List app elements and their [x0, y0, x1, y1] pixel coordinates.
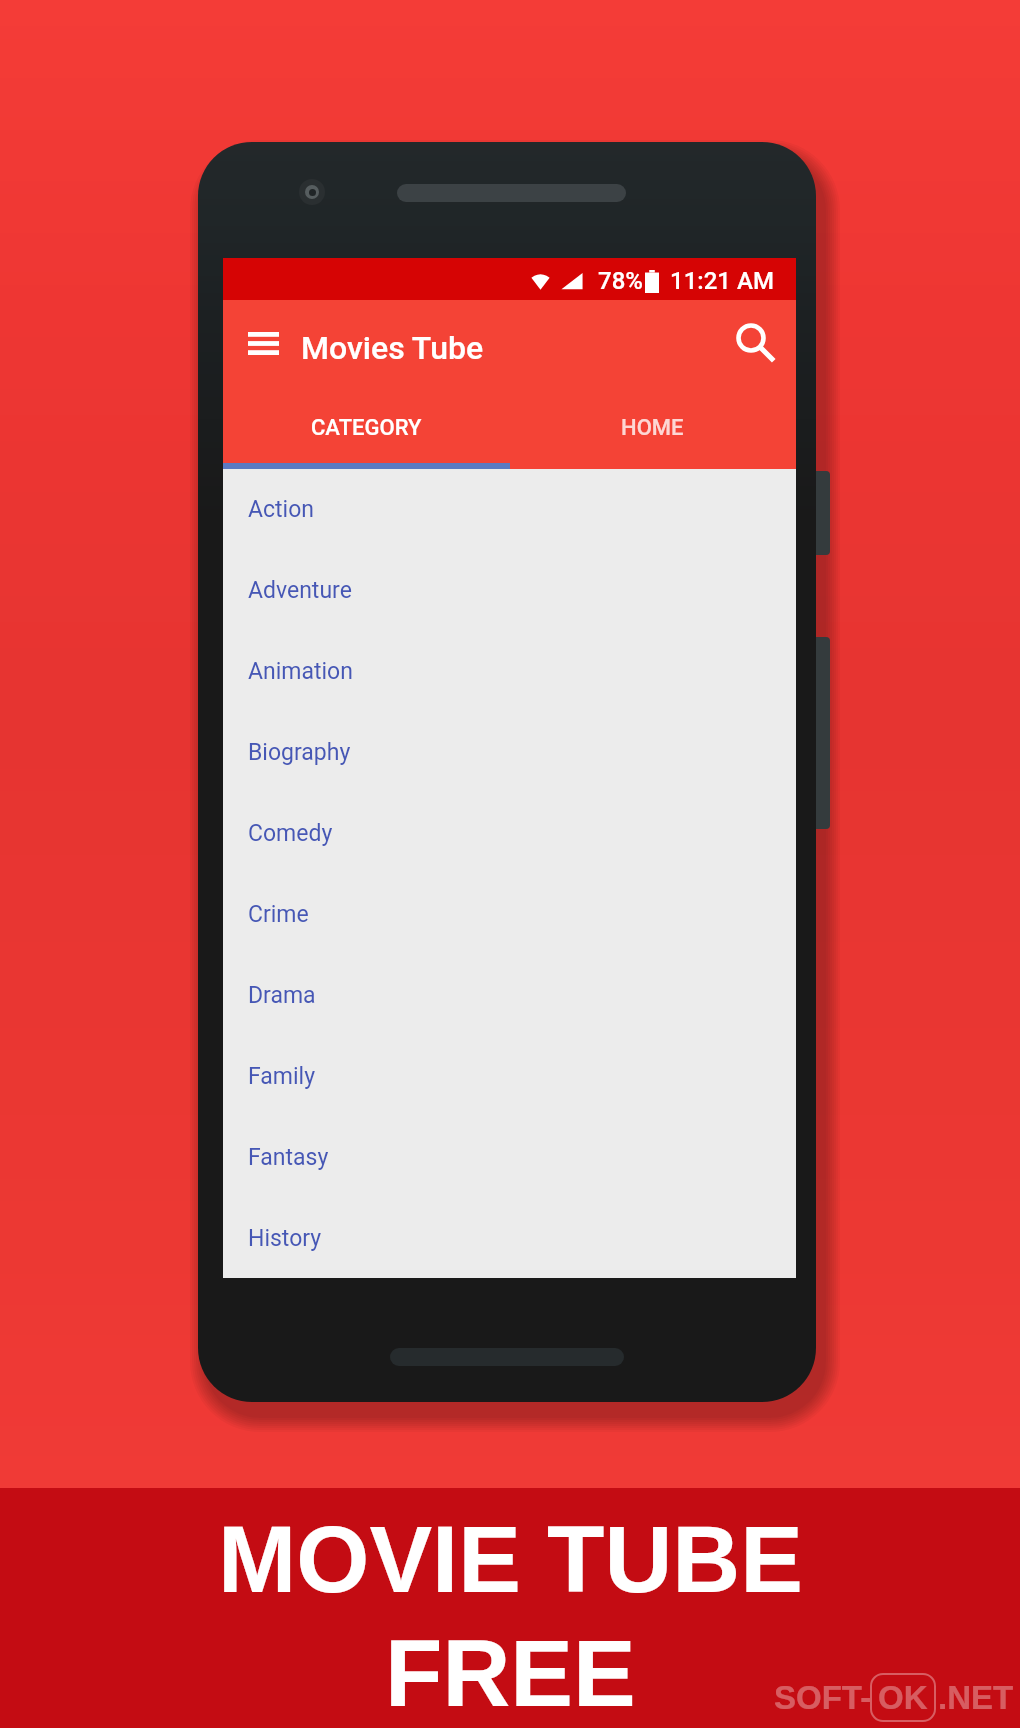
button[interactable]: Open navigation menu: [229, 314, 297, 382]
staticText: .NET: [938, 1679, 1014, 1716]
button[interactable]: Animation: [223, 631, 796, 712]
button[interactable]: Biography: [223, 712, 796, 793]
button[interactable]: CATEGORY: [223, 402, 509, 469]
staticText: 11:21 AM: [670, 267, 774, 295]
staticText: Movies Tube: [301, 329, 484, 367]
staticText: MOVIE TUBE: [218, 1507, 803, 1612]
button[interactable]: Drama: [223, 955, 796, 1036]
staticText: Crime: [248, 901, 309, 928]
button[interactable]: Action: [223, 469, 796, 550]
button[interactable]: Comedy: [223, 793, 796, 874]
button[interactable]: HOME: [509, 402, 796, 469]
button[interactable]: Search: [723, 317, 785, 379]
staticText: History: [248, 1225, 322, 1252]
staticText: 78%: [598, 267, 643, 295]
staticText: Adventure: [248, 577, 352, 604]
staticText: Action: [248, 496, 314, 523]
button[interactable]: Crime: [223, 874, 796, 955]
staticText: HOME: [621, 415, 684, 441]
staticText: Biography: [248, 739, 351, 766]
staticText: OK: [878, 1679, 928, 1716]
button[interactable]: History: [223, 1198, 796, 1278]
staticText: Drama: [248, 982, 316, 1009]
staticText: CATEGORY: [311, 415, 422, 441]
staticText: Comedy: [248, 820, 333, 847]
button[interactable]: Fantasy: [223, 1117, 796, 1198]
staticText: Family: [248, 1063, 316, 1090]
button[interactable]: Family: [223, 1036, 796, 1117]
button[interactable]: Adventure: [223, 550, 796, 631]
staticText: SOFT-: [774, 1679, 872, 1716]
staticText: Fantasy: [248, 1144, 329, 1171]
staticText: FREE: [385, 1621, 636, 1726]
staticText: Animation: [248, 658, 353, 685]
